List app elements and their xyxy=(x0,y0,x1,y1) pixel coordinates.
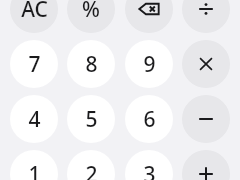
button[interactable]: % xyxy=(67,0,115,33)
staticText: 4 xyxy=(28,105,41,134)
button[interactable]: AC xyxy=(10,0,58,33)
button[interactable]: 3 xyxy=(125,150,173,180)
staticText: 7 xyxy=(28,50,41,79)
staticText: 2 xyxy=(85,160,98,180)
staticText: 9 xyxy=(143,50,156,79)
button[interactable]: Divide xyxy=(182,0,230,33)
staticText: 3 xyxy=(143,160,156,180)
button[interactable]: Backspace xyxy=(125,0,173,33)
button[interactable]: 7 xyxy=(10,40,58,88)
staticText: 5 xyxy=(85,105,98,134)
staticText: AC xyxy=(21,0,48,24)
button[interactable]: Multiply xyxy=(182,40,230,88)
staticText: % xyxy=(82,0,100,24)
button[interactable]: 5 xyxy=(67,95,115,143)
button[interactable]: 1 xyxy=(10,150,58,180)
button[interactable]: 2 xyxy=(67,150,115,180)
button[interactable]: 4 xyxy=(10,95,58,143)
staticText: 6 xyxy=(143,105,156,134)
button[interactable]: 6 xyxy=(125,95,173,143)
button[interactable]: 9 xyxy=(125,40,173,88)
staticText: 1 xyxy=(28,160,41,180)
button[interactable]: 8 xyxy=(67,40,115,88)
button[interactable]: Subtract xyxy=(182,95,230,143)
staticText: 8 xyxy=(85,50,98,79)
button[interactable]: Add xyxy=(182,150,230,180)
